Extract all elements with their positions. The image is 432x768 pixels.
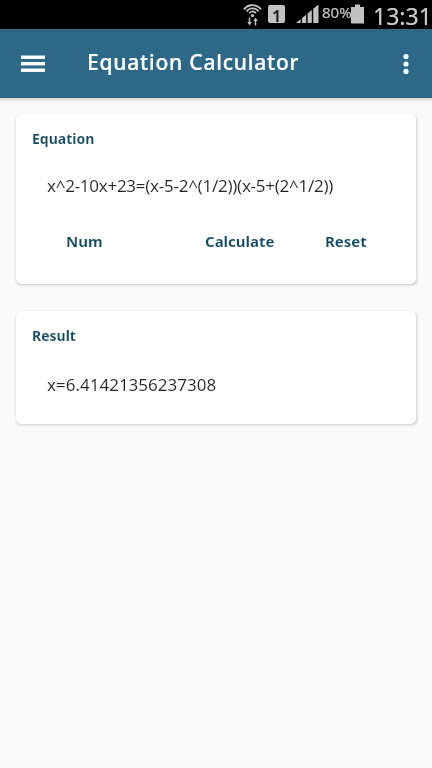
button[interactable] [12,43,54,85]
staticText: Result [32,326,76,345]
staticText: x=6.41421356237308 [47,373,217,396]
staticText: Calculate [205,231,275,251]
staticText: Equation [32,129,95,148]
staticText: Reset [325,231,367,251]
staticText: 1 [272,5,282,23]
staticText: 80% [322,2,352,22]
button[interactable]: Calculate [196,221,284,261]
button[interactable]: Num [54,221,114,261]
staticText: Equation Calculator [87,48,300,77]
button[interactable]: Reset [314,221,377,261]
staticText: 13:31 [373,0,432,29]
button[interactable] [387,43,425,85]
staticText: x^2-10x+23=(x-5-2^(1/2))(x-5+(2^1/2)) [47,174,334,197]
staticText: Num [66,231,103,251]
